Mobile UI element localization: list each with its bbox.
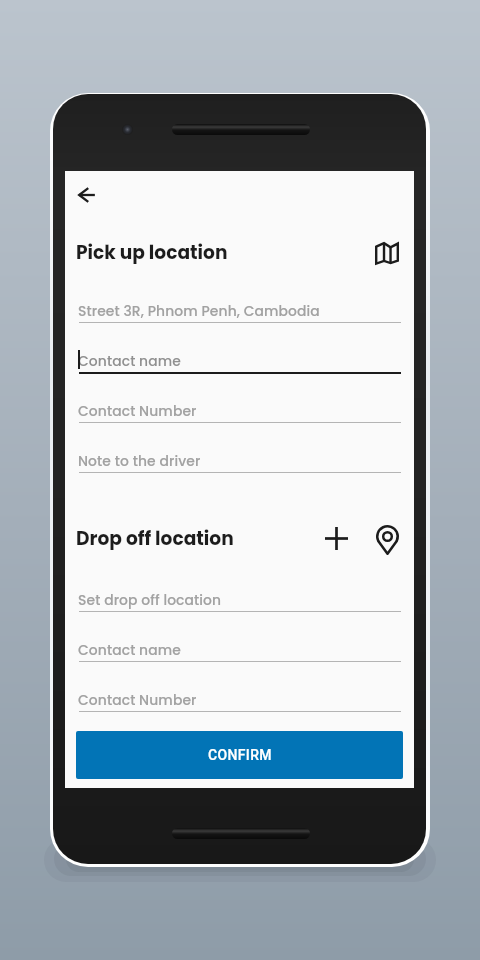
staticText: Pick up location [76,239,228,265]
staticText: Contact Number [78,401,197,420]
button[interactable]: Back [69,177,105,213]
staticText: CONFIRM [208,747,272,763]
staticText: Set drop off location [78,590,222,609]
staticText: Street 3R, Phnom Penh, Cambodia [78,301,320,320]
button[interactable]: Add stop [314,516,359,561]
staticText: Drop off location [76,525,234,551]
button[interactable]: Open map [364,231,410,275]
staticText: Contact name [78,640,181,659]
staticText: Contact name [78,351,181,370]
button[interactable]: CONFIRM [76,731,403,779]
button[interactable]: Choose on map [364,517,410,562]
staticText: Note to the driver [78,451,201,470]
staticText: Contact Number [78,690,197,709]
